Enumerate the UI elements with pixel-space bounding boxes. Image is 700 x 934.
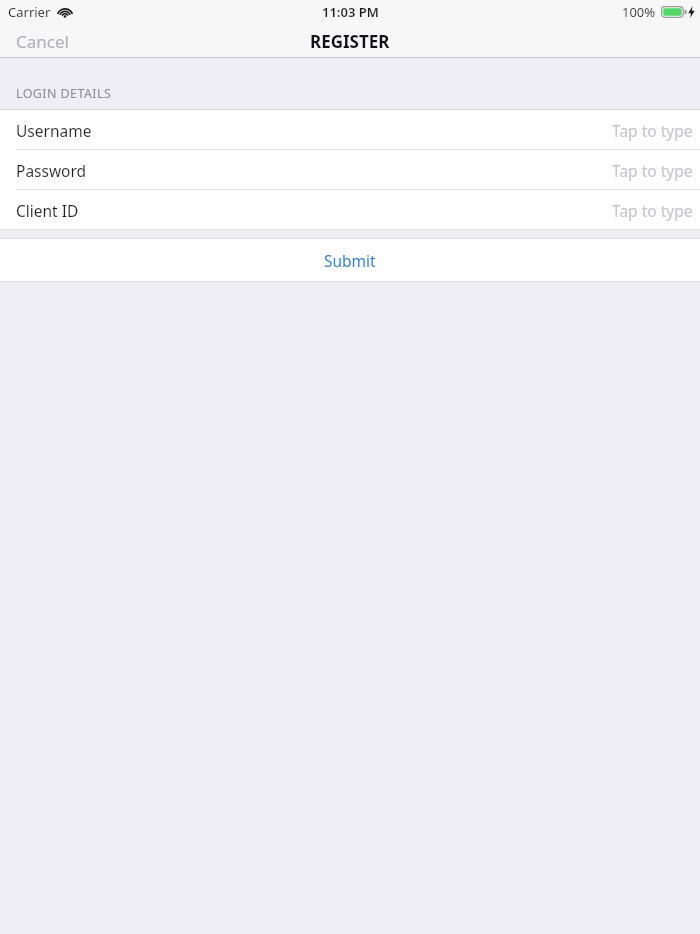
staticText: Submit [324,250,376,271]
staticText: Tap to type [612,120,693,141]
staticText: REGISTER [310,30,390,53]
staticText: LOGIN DETAILS [16,85,112,102]
staticText: Client ID [16,200,79,221]
button[interactable]: Password [0,150,700,190]
button[interactable]: Submit [0,238,700,282]
staticText: Tap to type [612,160,693,181]
staticText: 11:03 PM [322,3,379,21]
button[interactable]: Client ID [0,190,700,230]
other: Battery full, charging [661,6,687,18]
staticText: 100% [622,3,656,21]
other: Wi-Fi signal [57,6,73,18]
staticText: Tap to type [612,200,693,221]
staticText: Carrier [8,3,51,21]
staticText: Username [16,120,92,141]
button[interactable]: Username [0,110,700,150]
staticText: Cancel [16,30,69,53]
staticText: Password [16,160,87,181]
button[interactable]: Cancel [0,24,85,58]
